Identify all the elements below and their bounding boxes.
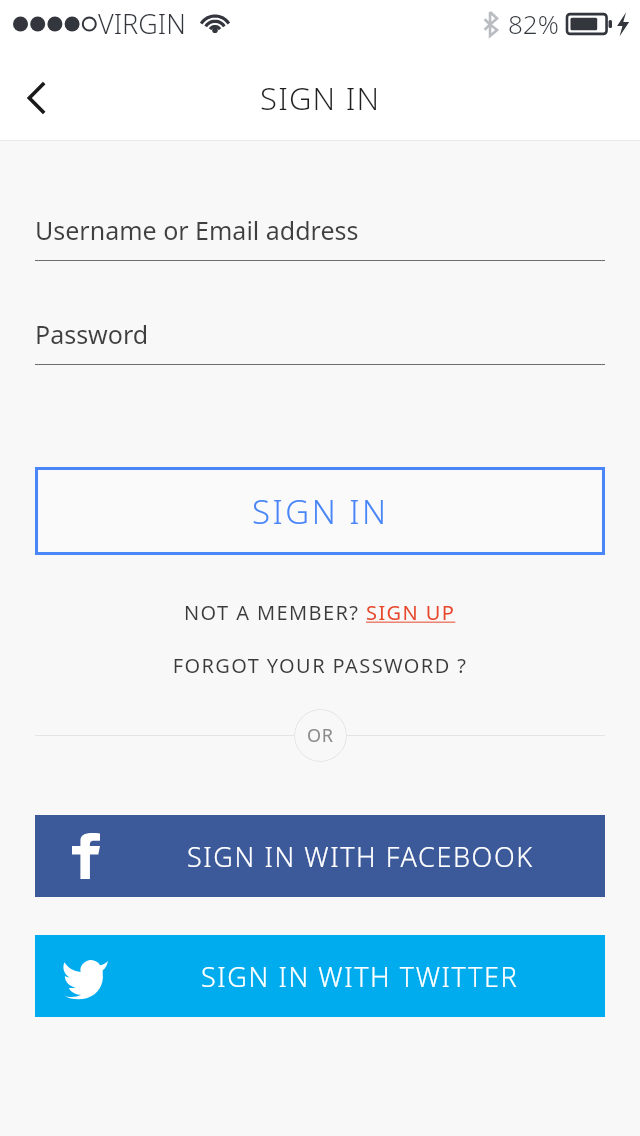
staticText: SIGN UP — [366, 599, 456, 626]
button[interactable]: Password — [35, 317, 605, 365]
button[interactable]: SIGN IN — [35, 467, 605, 555]
button[interactable]: FORGOT YOUR PASSWORD ? — [0, 650, 640, 681]
staticText: SIGN IN WITH FACEBOOK — [187, 838, 534, 875]
staticText: SIGN IN — [252, 489, 389, 534]
button[interactable]: Username or Email address — [35, 213, 605, 261]
staticText: Password — [35, 317, 149, 351]
button[interactable]: SIGN UP — [366, 599, 456, 626]
staticText: Username or Email address — [35, 213, 359, 247]
staticText: VIRGIN — [98, 5, 186, 42]
button[interactable]: SIGN IN WITH TWITTER — [35, 935, 605, 1017]
staticText: OR — [307, 723, 334, 748]
button[interactable]: Back — [0, 55, 74, 141]
staticText: NOT A MEMBER? — [184, 599, 366, 626]
staticText: 82% — [508, 6, 559, 41]
staticText: SIGN IN — [260, 77, 381, 119]
staticText: SIGN IN WITH TWITTER — [201, 958, 519, 995]
button[interactable]: SIGN IN WITH FACEBOOK — [35, 815, 605, 897]
